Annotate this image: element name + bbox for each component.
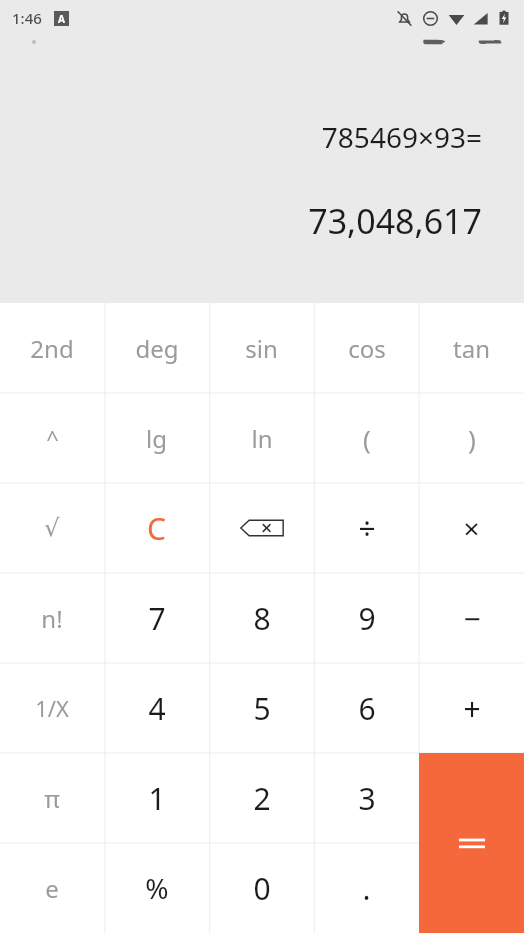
button[interactable]: ^ [0, 393, 104, 483]
staticText: cos [348, 332, 386, 365]
button[interactable]: tan [419, 303, 524, 393]
button[interactable]: Rotate screen [414, 40, 454, 44]
other: Backspace [239, 515, 285, 541]
staticText: . [362, 868, 371, 909]
button[interactable]: − [419, 573, 524, 663]
button[interactable]: 1 [104, 753, 209, 843]
staticText: 2 [253, 778, 271, 819]
staticText: deg [135, 332, 179, 365]
staticText: e [45, 872, 59, 905]
staticText: 8 [253, 598, 271, 639]
staticText: 9 [358, 598, 376, 639]
button[interactable]: ln [209, 393, 314, 483]
staticText: 785469×93= [321, 118, 482, 156]
button[interactable]: 6 [314, 663, 419, 753]
staticText: tan [453, 332, 490, 365]
staticText: 3 [358, 778, 376, 819]
button[interactable]: lg [104, 393, 209, 483]
button[interactable]: deg [104, 303, 209, 393]
staticText: 1 [148, 778, 166, 819]
staticText: sin [245, 332, 278, 365]
button[interactable]: ÷ [314, 483, 419, 573]
staticText: + [463, 688, 481, 729]
button[interactable]: n! [0, 573, 104, 663]
button[interactable]: Unit converter [470, 40, 510, 44]
button[interactable]: sin [209, 303, 314, 393]
button[interactable]: cos [314, 303, 419, 393]
button[interactable]: 0 [209, 843, 314, 933]
staticText: 2nd [30, 332, 74, 365]
button[interactable]: C [104, 483, 209, 573]
button[interactable]: 8 [209, 573, 314, 663]
button[interactable]: ) [419, 393, 524, 483]
staticText: 4 [148, 688, 166, 729]
button[interactable]: e [0, 843, 104, 933]
button[interactable]: 3 [314, 753, 419, 843]
button[interactable]: % [104, 843, 209, 933]
staticText: √ [44, 514, 60, 542]
staticText: 5 [253, 688, 271, 729]
button[interactable]: π [0, 753, 104, 843]
staticText: ÷ [358, 508, 376, 549]
staticText: 73,048,617 [308, 198, 482, 244]
staticText: A [58, 12, 65, 26]
staticText: C [147, 508, 166, 549]
button[interactable]: . [314, 843, 419, 933]
button[interactable]: Backspace [209, 483, 314, 573]
button[interactable]: × [419, 483, 524, 573]
staticText: % [145, 869, 169, 907]
button[interactable]: Settings [14, 40, 54, 44]
staticText: ln [251, 422, 273, 455]
staticText: ^ [46, 423, 59, 453]
button[interactable]: 5 [209, 663, 314, 753]
staticText: 6 [358, 688, 376, 729]
staticText: lg [146, 422, 167, 455]
button[interactable]: Equals [419, 753, 524, 933]
staticText: ) [468, 421, 476, 456]
staticText: 0 [253, 868, 271, 909]
button[interactable]: √ [0, 483, 104, 573]
button[interactable]: ( [314, 393, 419, 483]
staticText: 7 [148, 598, 166, 639]
button[interactable]: 2nd [0, 303, 104, 393]
button[interactable]: 1/X [0, 663, 104, 753]
staticText: n! [41, 602, 63, 635]
staticText: π [44, 782, 60, 815]
button[interactable]: 4 [104, 663, 209, 753]
staticText: × [463, 509, 480, 547]
staticText: ( [363, 421, 371, 456]
button[interactable]: + [419, 663, 524, 753]
button[interactable]: 7 [104, 573, 209, 663]
staticText: − [463, 598, 481, 639]
button[interactable]: 9 [314, 573, 419, 663]
staticText: 1/X [35, 693, 69, 723]
staticText: 1:46 [12, 8, 42, 28]
other: Equals [459, 833, 485, 853]
button[interactable]: 2 [209, 753, 314, 843]
